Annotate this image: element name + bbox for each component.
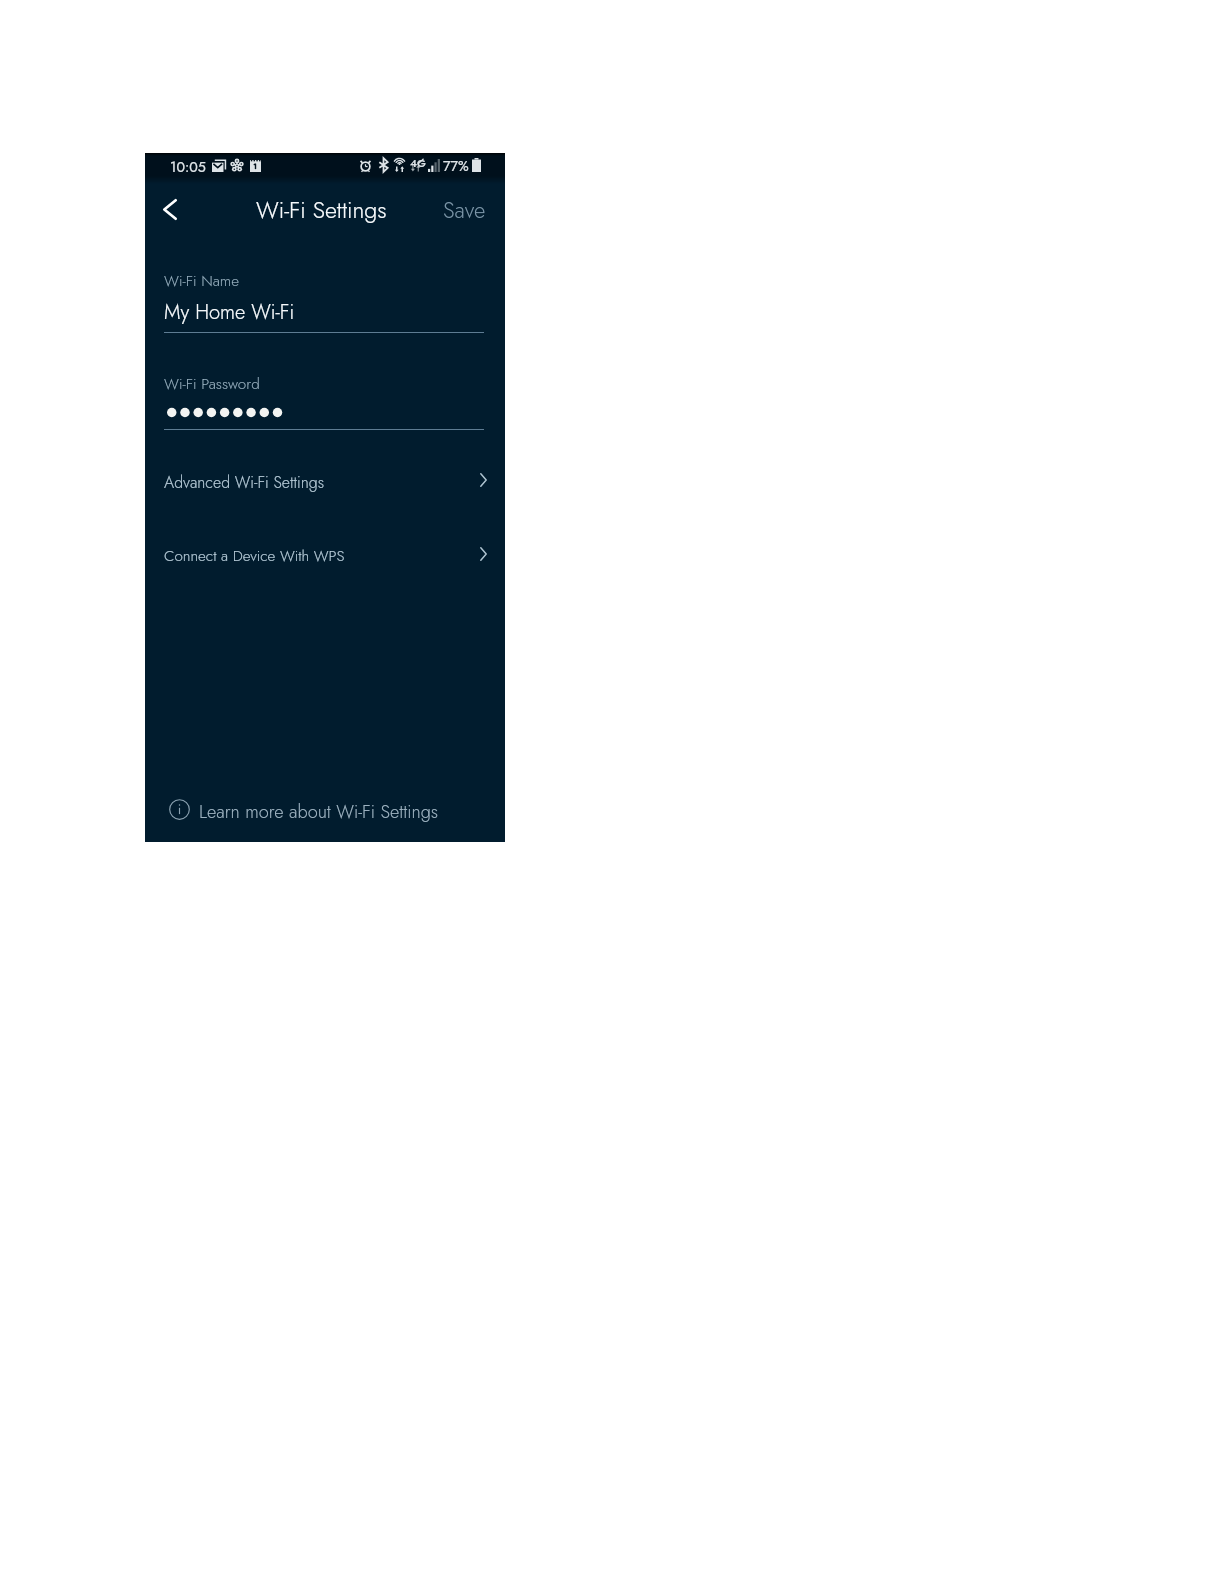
button[interactable]: Back (147, 181, 195, 227)
staticText: Advanced Wi-Fi Settings (164, 471, 325, 494)
staticText: Wi-Fi Password (164, 373, 260, 395)
staticText: Connect a Device With WPS (164, 545, 345, 567)
button[interactable] (164, 265, 484, 333)
staticText: 4G (410, 155, 426, 171)
button[interactable]: Advanced Wi-Fi Settings (145, 458, 505, 502)
button[interactable]: Connect a Device With WPS (145, 532, 505, 576)
staticText: Learn more about Wi-Fi Settings (199, 799, 439, 825)
button[interactable]: Learn more about Wi-Fi Settings (145, 793, 505, 827)
staticText: Save (443, 194, 486, 226)
staticText: 10:05 (170, 157, 206, 178)
staticText: My Home Wi-Fi (164, 297, 295, 326)
staticText: Wi-Fi Name (164, 270, 239, 292)
button[interactable]: Save (430, 184, 499, 222)
staticText: Wi-Fi Settings (256, 193, 387, 227)
staticText: 77% (443, 156, 469, 177)
button[interactable] (164, 367, 484, 430)
